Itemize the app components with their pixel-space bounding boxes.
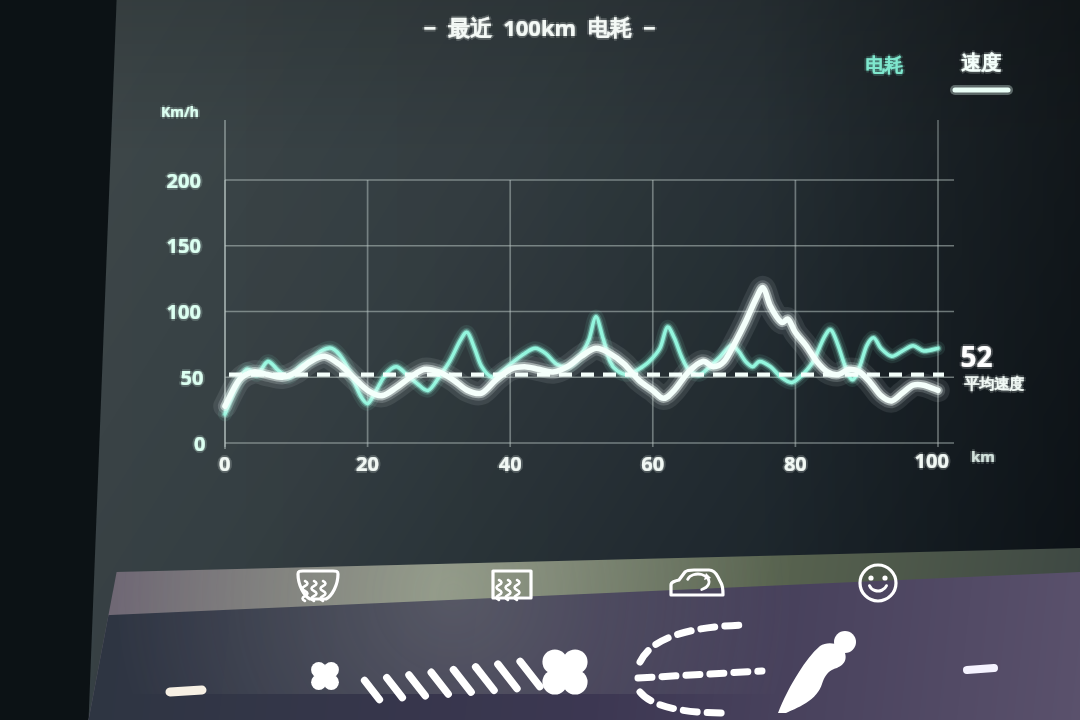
button[interactable]: Air recirculation [662, 558, 734, 614]
button[interactable]: Passenger temperature down [946, 638, 1022, 694]
button[interactable]: Fan speed minimum [296, 648, 358, 706]
button[interactable]: Driver temperature down [152, 660, 228, 716]
button[interactable]: Auto climate [848, 556, 910, 612]
button[interactable]: Fan speed maximum [534, 642, 602, 704]
button[interactable]: Airflow direction [742, 612, 928, 718]
button[interactable]: 电耗 energy tab [845, 44, 929, 90]
button[interactable]: Rear window defrost [478, 560, 548, 614]
button[interactable]: Front windshield defrost [284, 560, 354, 614]
button[interactable]: 速度 speed tab [944, 40, 1028, 98]
